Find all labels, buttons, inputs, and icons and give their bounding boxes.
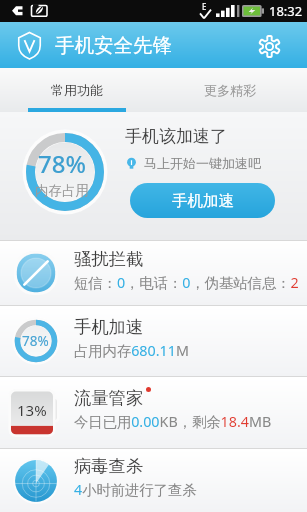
button[interactable]: 更多精彩	[153, 68, 307, 112]
staticText: 内存占用	[35, 182, 89, 199]
staticText: 78%	[38, 147, 86, 180]
staticText: 常用功能	[51, 82, 103, 98]
button[interactable]: 骚扰拦截	[0, 241, 307, 305]
button[interactable]: 78%	[0, 306, 307, 376]
staticText: E	[202, 1, 207, 12]
staticText: 4小时前进行了查杀	[74, 480, 197, 500]
staticText: 手机加速	[172, 191, 234, 211]
staticText: 马上开始一键加速吧	[144, 155, 261, 171]
staticText: 短信：0，电话：0，伪基站信息：2	[74, 273, 299, 293]
staticText: 今日已用0.00KB，剩余18.4MB	[74, 412, 272, 432]
button[interactable]: 病毒查杀	[0, 449, 307, 512]
button[interactable]: Settings	[249, 26, 289, 66]
staticText: 手机加速	[74, 316, 144, 338]
staticText: 手机该加速了	[125, 126, 227, 147]
staticText: 病毒查杀	[74, 455, 144, 477]
button[interactable]: 手机加速	[130, 183, 275, 218]
staticText: 占用内存680.11M	[74, 341, 189, 361]
staticText: 78%	[22, 332, 49, 350]
button[interactable]: 常用功能	[0, 68, 153, 112]
staticText: 流量管家	[74, 387, 144, 409]
staticText: 13%	[17, 400, 47, 420]
staticText: 18:32	[269, 2, 303, 20]
staticText: 手机安全先锋	[55, 33, 172, 58]
button[interactable]: 13%	[0, 377, 307, 448]
staticText: 更多精彩	[204, 82, 256, 98]
staticText: 骚扰拦截	[74, 248, 144, 270]
